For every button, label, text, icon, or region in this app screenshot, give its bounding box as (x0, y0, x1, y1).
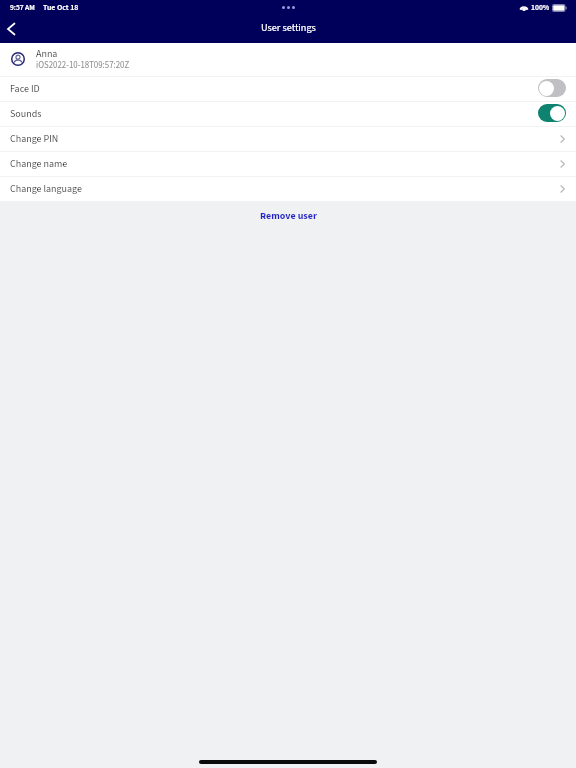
staticText: iOS2022-10-18T09:57:20Z (36, 59, 130, 72)
button[interactable]: Face ID (0, 77, 576, 101)
button[interactable]: Sounds (0, 102, 576, 126)
staticText: Change language (10, 182, 82, 196)
button[interactable]: Off (538, 79, 566, 97)
button[interactable]: Anna (0, 43, 576, 76)
staticText: Change name (10, 157, 68, 171)
staticText: Face ID (10, 82, 40, 96)
staticText: 9:57 AM (10, 2, 35, 13)
staticText: Tue Oct 18 (43, 2, 79, 13)
staticText: Change PIN (10, 132, 59, 146)
button[interactable]: Remove user (0, 202, 576, 229)
staticText: Sounds (10, 107, 42, 121)
button[interactable]: Change PIN (0, 127, 576, 151)
staticText: 100% (531, 2, 550, 13)
button[interactable]: Back (0, 14, 22, 43)
button[interactable]: On (538, 104, 566, 122)
staticText: Remove user (260, 209, 317, 223)
staticText: User settings (261, 21, 316, 36)
button[interactable]: Change language (0, 177, 576, 201)
staticText: Anna (36, 47, 58, 61)
button[interactable]: Change name (0, 152, 576, 176)
